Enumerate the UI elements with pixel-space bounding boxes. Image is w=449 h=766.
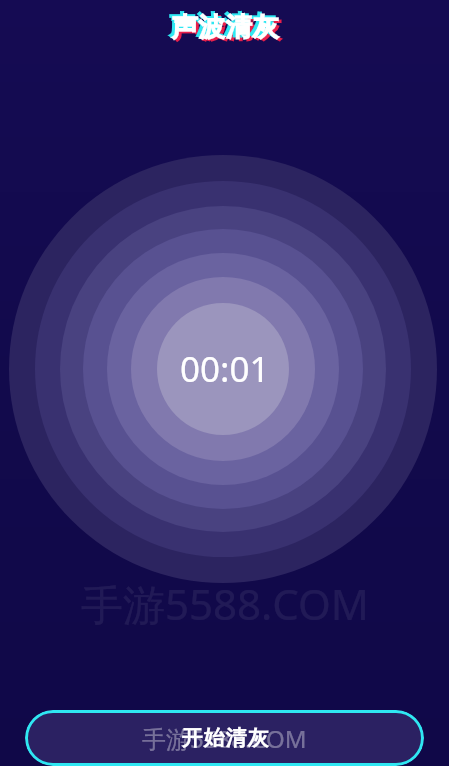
staticText: 手游5588.COM — [81, 575, 369, 632]
button[interactable]: 手游5588.COM — [25, 710, 424, 766]
staticText: 声波清灰 — [174, 13, 282, 46]
button[interactable]: 计时器 00:01 — [159, 303, 291, 435]
staticText: 声波清灰 — [171, 11, 279, 44]
staticText: 声波清灰 — [168, 9, 276, 42]
staticText: 00:01 — [180, 345, 270, 393]
staticText: 手游5588.COM — [142, 722, 307, 755]
staticText: 开始清灰 — [181, 725, 269, 751]
